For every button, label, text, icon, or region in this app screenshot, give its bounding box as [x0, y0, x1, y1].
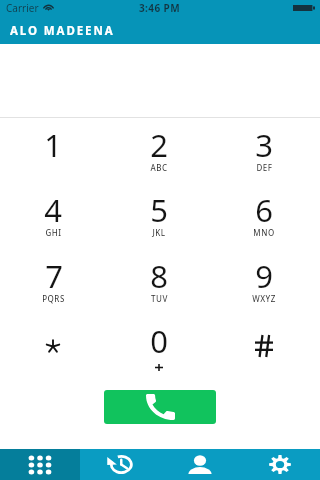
staticText: 4	[44, 189, 62, 231]
button[interactable]: 0	[106, 320, 212, 385]
staticText: ABC	[150, 162, 168, 173]
button[interactable]: 8	[106, 255, 212, 320]
staticText: 3:46 PM	[139, 1, 181, 15]
button[interactable]: 9	[211, 255, 317, 320]
staticText: PQRS	[42, 293, 65, 304]
button[interactable]: Call	[104, 390, 216, 424]
staticText: 8	[150, 255, 168, 297]
staticText: TUV	[151, 293, 168, 304]
staticText: 2	[150, 124, 168, 166]
button[interactable]: 6	[211, 189, 317, 254]
button[interactable]: Recent calls	[80, 449, 160, 480]
staticText: 5	[150, 189, 168, 231]
button[interactable]: Dialpad	[0, 449, 80, 480]
button[interactable]: Contacts	[160, 449, 240, 480]
staticText: 6	[255, 189, 273, 231]
button[interactable]: Settings	[240, 449, 320, 480]
button[interactable]	[0, 320, 106, 385]
staticText: MNO	[253, 227, 275, 238]
staticText: DEF	[256, 162, 273, 173]
staticText: 1	[44, 124, 62, 166]
staticText: WXYZ	[252, 293, 276, 304]
staticText: 0	[150, 320, 168, 362]
button[interactable]	[211, 320, 317, 385]
staticText: ALO MADEENA	[10, 23, 115, 39]
staticText: 3	[255, 124, 273, 166]
button[interactable]: 4	[0, 189, 106, 254]
staticText: 9	[255, 255, 273, 297]
staticText: 7	[45, 255, 63, 297]
staticText: Carrier	[6, 1, 39, 15]
button[interactable]: 3	[211, 124, 317, 189]
button[interactable]: 7	[0, 255, 106, 320]
button[interactable]: 2	[106, 124, 212, 189]
button[interactable]: 5	[106, 189, 212, 254]
staticText: GHI	[45, 227, 62, 238]
button[interactable]: 1	[0, 124, 106, 189]
staticText: JKL	[152, 227, 166, 238]
